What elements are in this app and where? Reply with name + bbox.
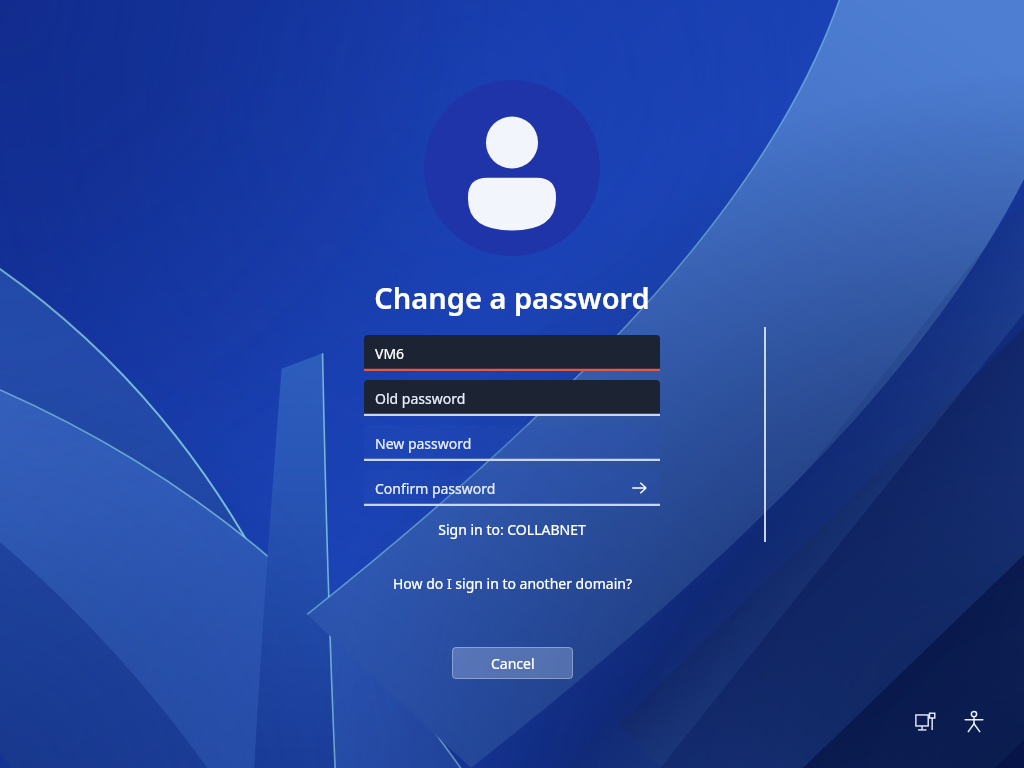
staticText: Old password bbox=[375, 389, 466, 408]
staticText: Sign in to: COLLABNET bbox=[438, 520, 586, 539]
other: Submit bbox=[628, 477, 650, 499]
button[interactable]: Confirm password bbox=[364, 470, 660, 506]
button[interactable]: Network bbox=[908, 704, 944, 740]
staticText: Confirm password bbox=[375, 479, 496, 498]
button[interactable]: Cancel bbox=[452, 647, 573, 679]
staticText: Cancel bbox=[491, 654, 535, 673]
button[interactable]: Ease of access bbox=[956, 704, 992, 740]
staticText: How do I sign in to another domain? bbox=[393, 574, 632, 593]
other: User account picture bbox=[424, 80, 600, 256]
button[interactable]: New password bbox=[364, 425, 660, 461]
staticText: New password bbox=[375, 434, 472, 453]
staticText: Change a password bbox=[374, 278, 650, 317]
staticText: VM6 bbox=[375, 344, 405, 363]
button[interactable]: How do I sign in to another domain? bbox=[387, 571, 638, 596]
button[interactable]: VM6 bbox=[364, 335, 660, 371]
button[interactable]: Old password bbox=[364, 380, 660, 416]
